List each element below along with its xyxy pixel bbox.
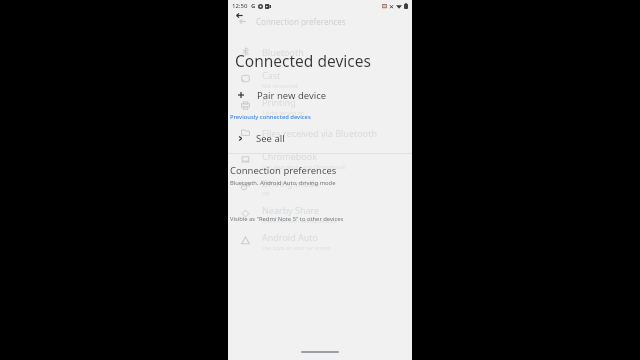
button[interactable]: Bluetooth: [228, 38, 412, 65]
staticText: 1 print service on: [262, 109, 305, 116]
staticText: Use apps on your car screen: [262, 244, 331, 251]
staticText: Previously connected devices: [230, 113, 311, 121]
staticText: 12:50: [232, 2, 248, 10]
button[interactable]: Navigate up: [234, 13, 250, 29]
staticText: Nearby Share: [262, 204, 320, 216]
staticText: Visible as "Redmi Note 5" to other devic…: [230, 215, 344, 223]
button[interactable]: Files received via Bluetooth: [228, 119, 412, 146]
staticText: Cast: [262, 69, 281, 81]
staticText: Android Auto: [262, 231, 319, 243]
staticText: Chromebook: [262, 150, 317, 162]
staticText: See all: [256, 132, 285, 145]
staticText: Files received via Bluetooth: [262, 127, 377, 139]
button[interactable]: Driving mode: [228, 173, 412, 200]
staticText: Connection preferences: [230, 164, 337, 177]
staticText: Connection preferences: [256, 16, 346, 27]
staticText: Bluetooth, Android Auto, driving mode: [230, 179, 336, 187]
staticText: Connected devices: [235, 50, 371, 71]
button[interactable]: Printing: [228, 92, 412, 119]
button[interactable]: Chromebook: [228, 146, 412, 173]
staticText: Driving mode: [262, 177, 320, 189]
staticText: Pair new device: [257, 89, 327, 102]
staticText: Link your phone and Chromebook: [262, 163, 346, 170]
staticText: Not connected: [262, 82, 298, 89]
button[interactable]: See all: [228, 130, 412, 146]
staticText: Printing: [262, 96, 296, 108]
staticText: Share files with nearby devices: [262, 217, 337, 224]
button[interactable]: Connection preferences: [228, 164, 412, 187]
staticText: Bluetooth: [262, 46, 304, 58]
staticText: G: [251, 2, 256, 10]
button[interactable]: Pair new device: [228, 86, 412, 104]
staticText: Off: [262, 190, 270, 197]
button[interactable]: Android Auto: [228, 227, 412, 254]
button[interactable]: Back: [231, 9, 247, 21]
button[interactable]: Navigate up: [228, 11, 412, 31]
button[interactable]: Cast: [228, 65, 412, 92]
button[interactable]: Nearby Share: [228, 200, 412, 227]
